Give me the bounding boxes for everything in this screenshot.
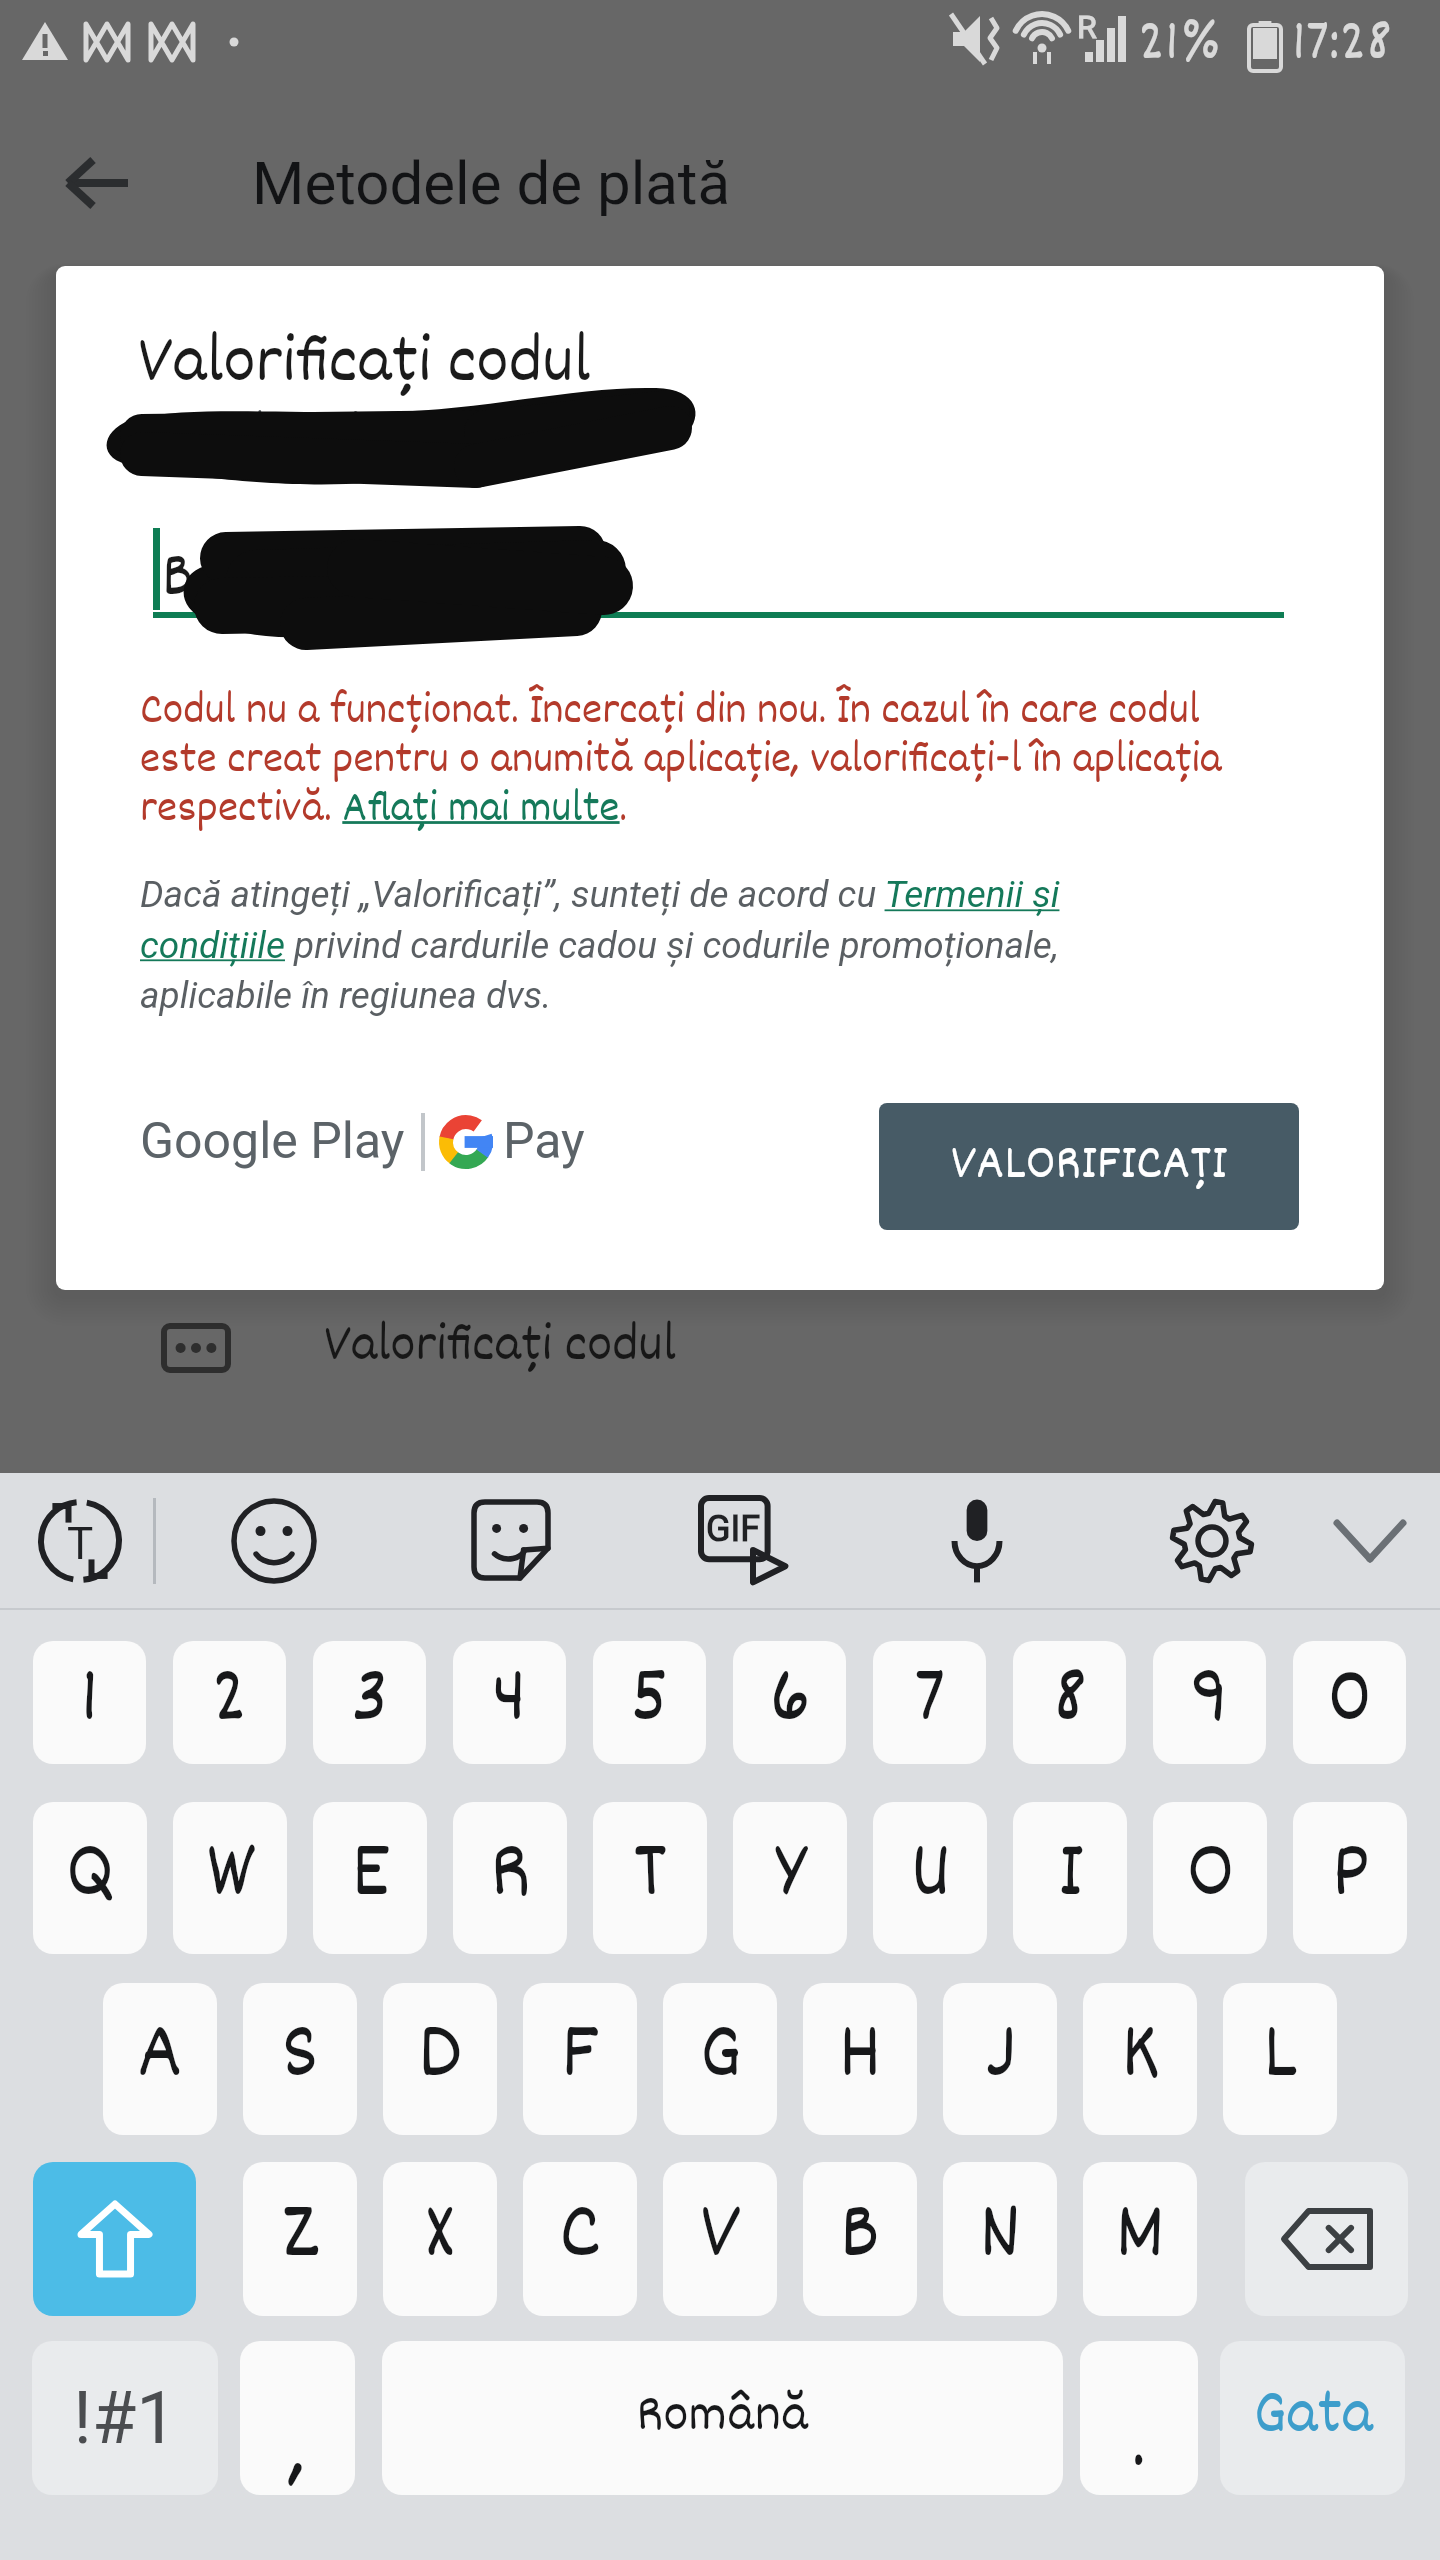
button[interactable]: G bbox=[663, 1983, 777, 2135]
staticText: Dacă atingeți „Valorificați”, sunteți de… bbox=[140, 873, 1085, 1017]
button[interactable]: F bbox=[523, 1983, 637, 2135]
button[interactable]: A bbox=[103, 1983, 217, 2135]
button[interactable]: Hide keyboard bbox=[1320, 1491, 1420, 1591]
button[interactable]: K bbox=[1083, 1983, 1197, 2135]
staticText: 8 bbox=[1053, 1643, 1087, 1763]
button[interactable]: Gata bbox=[1220, 2341, 1405, 2495]
button[interactable]: Voice input bbox=[921, 1485, 1033, 1597]
button[interactable]: 6 bbox=[733, 1641, 846, 1764]
staticText: Valorificați codul bbox=[324, 1308, 677, 1388]
staticText: H bbox=[838, 1999, 882, 2119]
button[interactable]: M bbox=[1083, 2162, 1197, 2316]
staticText: W bbox=[206, 1818, 255, 1938]
button[interactable]: L bbox=[1223, 1983, 1337, 2135]
staticText: J bbox=[985, 1999, 1016, 2119]
button[interactable]: U bbox=[873, 1802, 987, 1954]
button[interactable]: Română bbox=[382, 2341, 1063, 2495]
button[interactable]: !#1 bbox=[32, 2341, 218, 2495]
button[interactable]: GIF bbox=[688, 1485, 800, 1597]
staticText: Y bbox=[775, 1818, 806, 1938]
staticText: G bbox=[699, 1999, 742, 2119]
staticText: Introduceți un cod bbox=[138, 398, 498, 472]
staticText: Metodele de plată bbox=[252, 148, 731, 218]
staticText: C bbox=[559, 2179, 601, 2299]
staticText: 21% bbox=[1138, 2, 1223, 91]
staticText: 0 bbox=[1327, 1643, 1373, 1763]
staticText: 4 bbox=[492, 1643, 527, 1763]
staticText: 2 bbox=[211, 1643, 248, 1763]
staticText: S bbox=[281, 1999, 319, 2119]
button[interactable]: , bbox=[240, 2341, 355, 2495]
staticText: V bbox=[700, 2179, 741, 2299]
button[interactable]: I bbox=[1013, 1802, 1127, 1954]
staticText: T bbox=[633, 1818, 667, 1938]
staticText: R bbox=[490, 1818, 531, 1938]
button[interactable]: E bbox=[313, 1802, 427, 1954]
staticText: !#1 bbox=[73, 2376, 177, 2460]
button[interactable]: VALORIFICAȚI bbox=[879, 1103, 1299, 1230]
staticText: VALORIFICAȚI bbox=[951, 1130, 1228, 1204]
staticText: O bbox=[1186, 1818, 1235, 1938]
staticText: 6 bbox=[769, 1643, 811, 1763]
button[interactable]: T bbox=[593, 1802, 707, 1954]
button[interactable]: 8 bbox=[1013, 1641, 1126, 1764]
button[interactable]: S bbox=[243, 1983, 357, 2135]
button[interactable]: 5 bbox=[593, 1641, 706, 1764]
staticText: K bbox=[1121, 1999, 1160, 2119]
button[interactable]: P bbox=[1293, 1802, 1407, 1954]
button[interactable]: 0 bbox=[1293, 1641, 1406, 1764]
staticText: Gata bbox=[1253, 2371, 1373, 2465]
staticText: U bbox=[910, 1818, 951, 1938]
staticText: Codul nu a funcționat. Încercați din nou… bbox=[140, 680, 1264, 844]
button[interactable]: Emoji bbox=[218, 1485, 330, 1597]
staticText: T bbox=[67, 1518, 94, 1570]
staticText: A bbox=[137, 1999, 183, 2119]
staticText: 9 bbox=[1190, 1643, 1229, 1763]
staticText: . bbox=[1132, 2389, 1146, 2495]
button[interactable]: Z bbox=[243, 2162, 357, 2316]
button[interactable]: H bbox=[803, 1983, 917, 2135]
staticText: 17:28 bbox=[1292, 2, 1392, 91]
staticText: X bbox=[425, 2179, 455, 2299]
button[interactable]: 3 bbox=[313, 1641, 426, 1764]
button[interactable]: C bbox=[523, 2162, 637, 2316]
button[interactable]: V bbox=[663, 2162, 777, 2316]
button[interactable]: X bbox=[383, 2162, 497, 2316]
button[interactable]: Q bbox=[33, 1802, 147, 1954]
staticText: R bbox=[1077, 8, 1097, 46]
staticText: N bbox=[979, 2179, 1021, 2299]
button[interactable]: 1 bbox=[33, 1641, 146, 1764]
staticText: Română bbox=[636, 2378, 809, 2458]
button[interactable]: Back bbox=[38, 123, 158, 243]
button[interactable]: 9 bbox=[1153, 1641, 1266, 1764]
button[interactable]: O bbox=[1153, 1802, 1267, 1954]
button[interactable]: Stickers bbox=[455, 1485, 567, 1597]
staticText: L bbox=[1263, 1999, 1298, 2119]
button[interactable]: Shift bbox=[33, 2162, 196, 2316]
staticText: P bbox=[1331, 1818, 1370, 1938]
button[interactable]: D bbox=[383, 1983, 497, 2135]
button[interactable]: Y bbox=[733, 1802, 847, 1954]
button[interactable]: Backspace bbox=[1245, 2162, 1408, 2316]
staticText: 5 bbox=[630, 1643, 669, 1763]
staticText: F bbox=[561, 1999, 599, 2119]
staticText: 3 bbox=[351, 1643, 389, 1763]
button[interactable]: R bbox=[453, 1802, 567, 1954]
button[interactable]: Translate bbox=[24, 1485, 136, 1597]
button[interactable]: . bbox=[1080, 2341, 1198, 2495]
button[interactable]: B bbox=[803, 2162, 917, 2316]
staticText: 7 bbox=[913, 1643, 946, 1763]
staticText: GIF bbox=[706, 1508, 761, 1550]
button[interactable]: 4 bbox=[453, 1641, 566, 1764]
staticText: 1 bbox=[80, 1643, 99, 1763]
button[interactable]: Settings bbox=[1156, 1485, 1268, 1597]
staticText: M bbox=[1115, 2179, 1165, 2299]
button[interactable]: 7 bbox=[873, 1641, 986, 1764]
button[interactable]: 2 bbox=[173, 1641, 286, 1764]
staticText: B3SD-7KQ2 bbox=[162, 534, 432, 628]
button[interactable]: N bbox=[943, 2162, 1057, 2316]
staticText: E bbox=[351, 1818, 390, 1938]
button[interactable]: J bbox=[943, 1983, 1057, 2135]
staticText: Q bbox=[66, 1818, 115, 1938]
button[interactable]: W bbox=[173, 1802, 287, 1954]
